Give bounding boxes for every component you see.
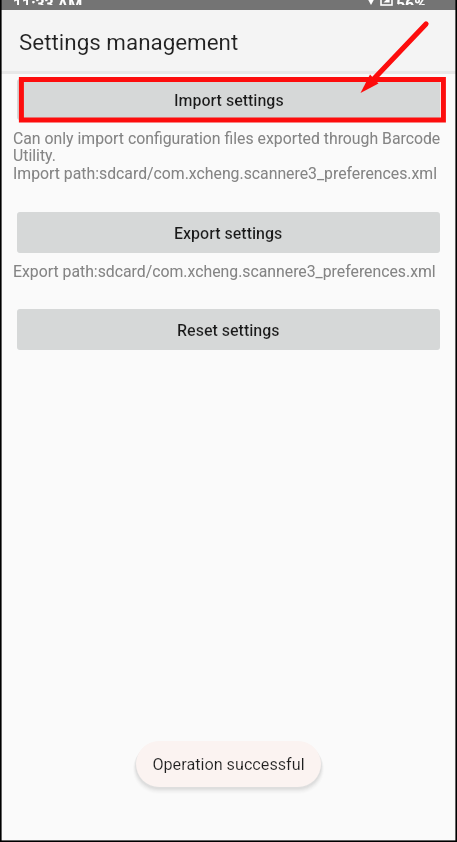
staticText: Export path:sdcard/com.xcheng.scannere3_… <box>13 262 436 281</box>
staticText: Reset settings <box>177 321 280 340</box>
other: Annotation highlighting Import settings <box>0 0 457 842</box>
staticText: 11:33 AM <box>13 0 83 5</box>
button[interactable]: Export settings <box>17 212 440 253</box>
staticText: Export settings <box>174 224 283 243</box>
staticText: 56% <box>396 0 426 5</box>
staticText: Import settings <box>174 91 284 110</box>
staticText: Settings management <box>19 29 239 55</box>
staticText: Can only import configuration files expo… <box>13 129 450 183</box>
button[interactable]: Reset settings <box>17 309 440 350</box>
button[interactable]: Import settings <box>17 79 440 120</box>
button[interactable]: Operation successful <box>136 741 321 787</box>
staticText: Operation successful <box>152 755 305 774</box>
